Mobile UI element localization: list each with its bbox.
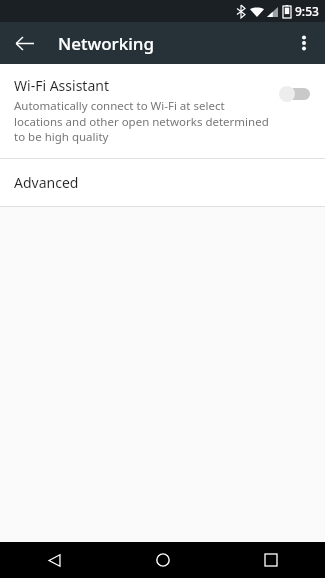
button[interactable]: Recent apps: [217, 542, 325, 578]
staticText: Networking: [58, 32, 155, 55]
button[interactable]: More options: [286, 25, 322, 61]
button[interactable]: Home: [109, 542, 217, 578]
staticText: Advanced: [14, 173, 79, 192]
button[interactable]: Wi-Fi Assistant toggle: [279, 82, 313, 106]
button[interactable]: Wi-Fi Assistant: [0, 64, 325, 158]
button[interactable]: Back: [0, 542, 109, 578]
button[interactable]: Navigate up: [6, 25, 42, 61]
staticText: 9:53: [295, 3, 319, 19]
staticText: Automatically connect to Wi-Fi at select…: [14, 98, 269, 144]
staticText: Wi-Fi Assistant: [14, 76, 109, 95]
button[interactable]: Advanced: [0, 159, 325, 206]
